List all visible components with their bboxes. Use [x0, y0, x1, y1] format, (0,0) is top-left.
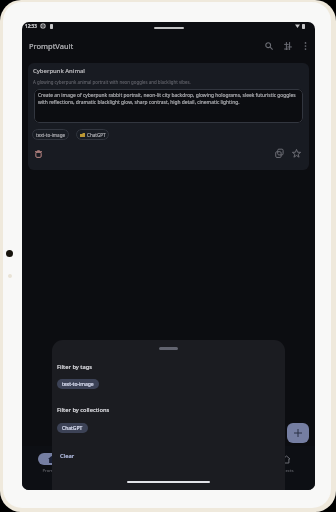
staticText: text-to-image [36, 132, 66, 138]
staticText: ChatGPT [62, 425, 83, 432]
button[interactable]: Search [261, 38, 277, 54]
staticText: Projects [277, 467, 294, 473]
staticText: text-to-image [62, 381, 94, 388]
button[interactable]: ChatGPT [76, 129, 109, 140]
button[interactable]: Copy [273, 147, 286, 160]
staticText: Prompts [42, 467, 60, 473]
button[interactable]: text-to-image [57, 379, 99, 389]
button[interactable]: Projects [256, 453, 315, 475]
button[interactable]: Clear [60, 452, 75, 460]
button[interactable]: Favorite [290, 147, 303, 160]
staticText: 12:33 [25, 23, 37, 29]
button[interactable]: Prompts [22, 453, 80, 475]
staticText: Filter by collections [57, 406, 110, 414]
staticText: A glowing cyberpunk animal portrait with… [33, 79, 191, 85]
button[interactable]: New prompt [287, 423, 309, 443]
button[interactable]: Delete [32, 147, 45, 160]
staticText: Filter by tags [57, 363, 93, 371]
button[interactable]: More options [297, 38, 313, 54]
staticText: Clear [60, 452, 75, 460]
staticText: Cyberpunk Animal [33, 67, 85, 75]
staticText: Create an image of cyberpunk rabbit port… [38, 92, 299, 106]
staticText: PromptVault [29, 41, 74, 51]
button[interactable]: ChatGPT [57, 423, 88, 433]
button[interactable]: Cyberpunk Animal [28, 63, 309, 170]
button[interactable]: text-to-image [32, 129, 69, 140]
staticText: ChatGPT [87, 132, 106, 138]
button[interactable]: Filter [280, 38, 296, 54]
